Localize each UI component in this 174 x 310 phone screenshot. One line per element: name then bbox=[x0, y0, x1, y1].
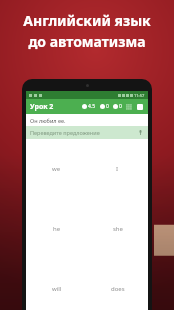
staticText: Английский язык bbox=[23, 11, 151, 30]
staticText: he bbox=[53, 225, 61, 233]
button[interactable]: Он любил ее. bbox=[26, 114, 148, 126]
staticText: will bbox=[52, 285, 62, 293]
button[interactable]: Voice input bbox=[137, 129, 144, 136]
button[interactable]: will bbox=[26, 259, 87, 310]
staticText: we bbox=[52, 165, 61, 173]
button[interactable]: 0 bbox=[99, 103, 110, 110]
staticText: I bbox=[116, 165, 119, 173]
staticText: до автоматизма bbox=[28, 32, 146, 51]
staticText: 0 bbox=[119, 103, 122, 110]
button[interactable]: Grid bbox=[125, 103, 133, 111]
button[interactable]: she bbox=[87, 199, 148, 259]
button[interactable]: Переведите предложение bbox=[26, 126, 148, 139]
button[interactable]: he bbox=[26, 199, 87, 259]
staticText: Переведите предложение bbox=[30, 129, 100, 136]
button[interactable]: 0 bbox=[112, 103, 123, 110]
button[interactable]: does bbox=[87, 259, 148, 310]
button[interactable]: Menu bbox=[136, 103, 144, 111]
staticText: 4.5 bbox=[88, 103, 96, 110]
staticText: 11:57 bbox=[134, 93, 145, 98]
staticText: she bbox=[113, 225, 123, 233]
button[interactable]: we bbox=[26, 139, 87, 199]
staticText: does bbox=[111, 285, 125, 293]
button[interactable]: Урок 2 bbox=[30, 102, 54, 112]
staticText: 0 bbox=[106, 103, 109, 110]
button[interactable]: 4.5 bbox=[81, 103, 97, 110]
staticText: Он любил ее. bbox=[30, 117, 66, 124]
